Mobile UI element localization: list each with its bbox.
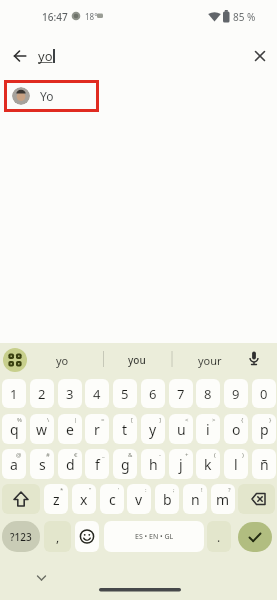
staticText: ( [214, 451, 216, 459]
staticText: @ [16, 451, 22, 459]
button[interactable]: p [252, 414, 276, 444]
button[interactable]: z [44, 484, 68, 514]
button[interactable]: r [85, 414, 109, 444]
staticText: u [177, 420, 186, 439]
button[interactable] [2, 484, 40, 514]
button[interactable]: ñ [252, 449, 276, 479]
staticText: ] [159, 416, 161, 424]
button[interactable]: b [155, 484, 179, 514]
staticText: : [145, 486, 147, 494]
staticText: h [149, 455, 158, 474]
staticText: k [204, 455, 212, 474]
button[interactable] [238, 484, 275, 514]
staticText: you [128, 353, 146, 367]
staticText: j [179, 455, 183, 474]
button[interactable]: d [58, 449, 82, 479]
button[interactable] [75, 521, 99, 552]
button[interactable]: m [211, 484, 235, 514]
staticText: c [109, 490, 116, 509]
staticText: a [10, 455, 18, 474]
button[interactable]: e [58, 414, 82, 444]
button[interactable]: f [85, 449, 109, 479]
button[interactable]: ES • EN • GL [104, 521, 204, 552]
button[interactable] [249, 45, 271, 67]
button[interactable]: ?123 [2, 521, 40, 552]
button[interactable]: 0 [252, 379, 276, 408]
button[interactable]: 8 [196, 379, 220, 408]
button[interactable]: t [113, 414, 137, 444]
staticText: & [128, 451, 133, 459]
button[interactable]: Yo [4, 80, 99, 112]
staticText: Yo [40, 88, 54, 104]
button[interactable]: . [207, 521, 231, 552]
staticText: { [241, 416, 244, 424]
staticText: o [232, 420, 241, 439]
staticText: 3 [66, 385, 74, 403]
staticText: ) [242, 451, 244, 459]
staticText: " [89, 486, 92, 494]
button[interactable]: g [113, 449, 137, 479]
staticText: = [101, 416, 105, 424]
staticText: , [56, 529, 60, 545]
staticText: 7 [177, 385, 185, 403]
button[interactable] [3, 348, 27, 372]
button[interactable] [238, 522, 272, 552]
staticText: p [260, 420, 269, 439]
staticText: yo [56, 353, 69, 368]
staticText: your [198, 353, 222, 368]
staticText: . [217, 529, 221, 545]
staticText: 18° [85, 11, 98, 22]
button[interactable]: c [100, 484, 124, 514]
button[interactable]: n [183, 484, 207, 514]
staticText: + [185, 451, 189, 459]
staticText: q [10, 420, 19, 439]
staticText: ñ [260, 455, 269, 474]
button[interactable]: k [196, 449, 220, 479]
staticText: \ [47, 416, 50, 424]
staticText: > [212, 416, 216, 424]
button[interactable]: , [44, 521, 71, 552]
staticText: _ [102, 451, 105, 459]
button[interactable]: your [185, 345, 235, 375]
staticText: s [39, 455, 46, 474]
button[interactable] [8, 44, 32, 68]
staticText: ; [173, 486, 175, 494]
button[interactable]: i [196, 414, 220, 444]
button[interactable]: v [127, 484, 151, 514]
button[interactable]: q [2, 414, 26, 444]
button[interactable] [242, 347, 266, 371]
button[interactable]: l [224, 449, 248, 479]
button[interactable]: 4 [85, 379, 109, 408]
button[interactable]: j [169, 449, 193, 479]
button[interactable]: h [141, 449, 165, 479]
button[interactable]: 9 [224, 379, 248, 408]
button[interactable]: you [112, 345, 162, 375]
button[interactable]: 7 [169, 379, 193, 408]
button[interactable]: 5 [113, 379, 137, 408]
button[interactable]: a [2, 449, 26, 479]
staticText: | [74, 416, 78, 424]
staticText: l [234, 455, 238, 474]
button[interactable]: u [169, 414, 193, 444]
staticText: b [163, 490, 172, 509]
staticText: € [74, 451, 78, 459]
button[interactable]: o [224, 414, 248, 444]
button[interactable]: s [30, 449, 54, 479]
button[interactable]: 6 [141, 379, 165, 408]
button[interactable]: yo [40, 345, 84, 375]
staticText: ! [201, 486, 203, 494]
staticText: yo [38, 47, 53, 65]
staticText: x [80, 490, 88, 509]
button[interactable]: x [72, 484, 96, 514]
staticText: } [269, 416, 272, 424]
button[interactable]: 1 [2, 379, 26, 408]
staticText: 6 [149, 385, 157, 403]
staticText: n [191, 490, 200, 509]
staticText: 9 [232, 385, 240, 403]
button[interactable]: 2 [30, 379, 54, 408]
button[interactable]: 3 [58, 379, 82, 408]
staticText: 85 % [233, 10, 256, 24]
button[interactable]: w [30, 414, 54, 444]
button[interactable]: y [141, 414, 165, 444]
staticText: r [94, 420, 100, 439]
